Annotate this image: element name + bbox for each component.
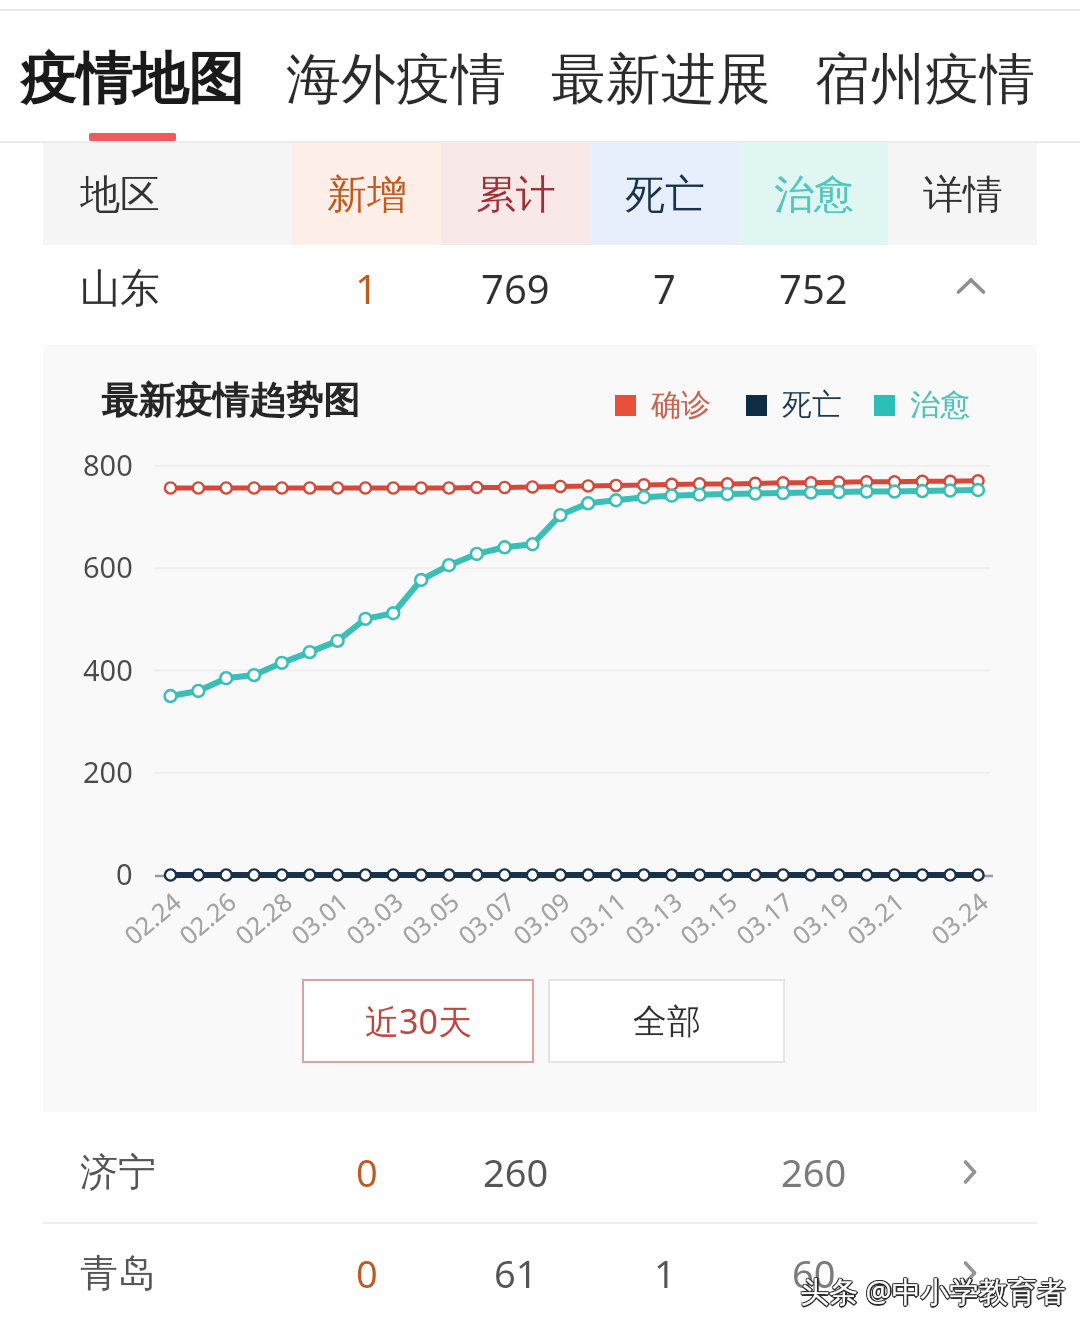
button[interactable]: 全部 [548, 979, 785, 1063]
staticText: 治愈 [910, 386, 970, 424]
staticText: 03.17 [729, 884, 799, 952]
staticText: 济宁 [80, 1148, 156, 1196]
staticText: 疫情地图 [20, 44, 244, 115]
button[interactable]: 累计 [441, 143, 590, 245]
button[interactable]: 青岛 [0, 1218, 1080, 1326]
staticText: 青岛 [80, 1249, 156, 1297]
staticText: 头条 @中小学教育者 [799, 1270, 1065, 1310]
button[interactable]: 济宁 [0, 1117, 1080, 1227]
staticText: 7 [653, 261, 676, 315]
staticText: 03.15 [673, 884, 743, 952]
staticText: 头条 @中小学教育者 [800, 1273, 1066, 1313]
staticText: 03.24 [924, 884, 994, 952]
staticText: 1 [355, 261, 378, 315]
staticText: 最新进展 [551, 45, 771, 114]
staticText: 头条 @中小学教育者 [802, 1271, 1068, 1311]
button[interactable]: 宿州疫情 [810, 39, 1040, 119]
button[interactable]: 疫情地图 [8, 39, 256, 119]
staticText: 02.28 [228, 884, 298, 952]
staticText: 宿州疫情 [815, 45, 1035, 114]
staticText: 03.19 [785, 884, 855, 952]
staticText: 0 [356, 1247, 378, 1299]
staticText: 769 [481, 261, 550, 315]
staticText: 260 [781, 1146, 847, 1198]
staticText: 600 [83, 547, 133, 586]
staticText: 头条 @中小学教育者 [800, 1271, 1066, 1311]
other: Details [950, 1152, 990, 1192]
button[interactable]: 最新进展 [546, 39, 776, 119]
staticText: 海外疫情 [286, 45, 506, 114]
staticText: 02.26 [172, 884, 242, 952]
staticText: 治愈 [774, 169, 854, 219]
staticText: 山东 [80, 263, 160, 313]
staticText: 全部 [633, 1000, 701, 1043]
staticText: 260 [483, 1146, 549, 1198]
button[interactable]: Collapse [888, 238, 1037, 338]
staticText: 地区 [80, 169, 160, 219]
staticText: 头条 @中小学教育者 [801, 1270, 1067, 1310]
staticText: 头条 @中小学教育者 [799, 1272, 1065, 1312]
button[interactable]: 山东 [0, 238, 1080, 338]
staticText: 03.05 [395, 884, 465, 952]
staticText: 03.21 [840, 884, 910, 952]
button[interactable]: 确诊 [615, 379, 711, 431]
staticText: 0 [356, 1146, 378, 1198]
staticText: 02.24 [117, 884, 187, 952]
staticText: 头条 @中小学教育者 [800, 1270, 1066, 1310]
button[interactable]: 死亡 [590, 143, 739, 245]
staticText: 确诊 [651, 386, 711, 424]
staticText: 03.03 [339, 884, 409, 952]
staticText: 03.07 [451, 884, 521, 952]
staticText: 头条 @中小学教育者 [799, 1271, 1065, 1311]
button[interactable]: 治愈 [874, 379, 970, 431]
staticText: 死亡 [625, 169, 705, 219]
other: Details [950, 1253, 990, 1293]
button[interactable]: 海外疫情 [281, 39, 511, 119]
staticText: 近30天 [365, 998, 472, 1044]
staticText: 752 [779, 261, 848, 315]
button[interactable]: Details [888, 1218, 1037, 1326]
staticText: 详情 [923, 169, 1003, 219]
staticText: 1 [654, 1247, 676, 1299]
other: Collapse [951, 268, 991, 308]
staticText: 400 [83, 650, 133, 689]
button[interactable]: 详情 [888, 143, 1037, 245]
staticText: 61 [494, 1247, 538, 1299]
staticText: 60 [792, 1247, 836, 1299]
staticText: 03.09 [506, 884, 576, 952]
staticText: 头条 @中小学教育者 [801, 1272, 1067, 1312]
staticText: 03.01 [284, 884, 354, 952]
staticText: 03.13 [618, 884, 688, 952]
button[interactable]: Details [888, 1117, 1037, 1227]
staticText: 0 [116, 854, 133, 893]
staticText: 200 [83, 752, 133, 791]
staticText: 死亡 [782, 386, 842, 424]
button[interactable]: 地区 [43, 143, 292, 245]
staticText: 累计 [476, 169, 556, 219]
button[interactable]: 死亡 [746, 379, 842, 431]
button[interactable]: 治愈 [739, 143, 888, 245]
button[interactable]: 新增 [292, 143, 441, 245]
staticText: 最新疫情趋势图 [101, 377, 360, 424]
staticText: 800 [83, 445, 133, 484]
button[interactable]: 近30天 [302, 979, 534, 1063]
staticText: 03.11 [562, 884, 632, 952]
staticText: 新增 [327, 169, 407, 219]
